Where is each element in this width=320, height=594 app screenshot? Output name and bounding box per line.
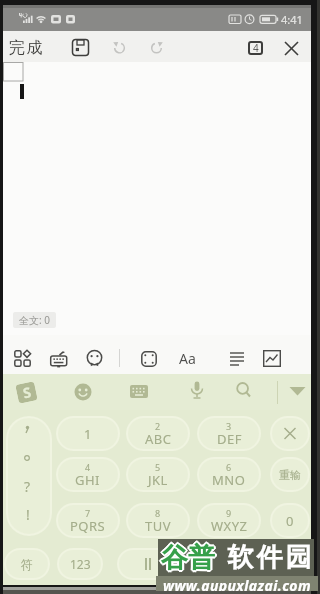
- button[interactable]: 6: [197, 457, 261, 492]
- staticText: ?: [24, 477, 31, 496]
- staticText: S: [21, 382, 33, 402]
- button[interactable]: [141, 351, 157, 367]
- button[interactable]: [130, 385, 148, 398]
- button[interactable]: [284, 41, 299, 56]
- button[interactable]: [190, 381, 204, 401]
- staticText: WXYZ: [211, 517, 248, 535]
- staticText: 123: [70, 556, 91, 572]
- button[interactable]: ?: [6, 416, 52, 536]
- staticText: JKL: [148, 471, 168, 489]
- button[interactable]: Aa: [179, 349, 196, 368]
- staticText: 4: [253, 41, 259, 55]
- button[interactable]: 5: [126, 457, 190, 492]
- staticText: 谷普: [163, 541, 217, 575]
- button[interactable]: [289, 386, 307, 398]
- button[interactable]: [149, 40, 164, 54]
- button[interactable]: [112, 40, 127, 54]
- staticText: 重输: [279, 468, 301, 482]
- staticText: 谷普: [162, 542, 216, 576]
- staticText: 8: [155, 507, 161, 519]
- staticText: ABC: [145, 430, 172, 448]
- staticText: 谷普: [162, 540, 216, 574]
- button[interactable]: 完成: [8, 38, 43, 58]
- button[interactable]: 3: [197, 416, 261, 451]
- staticText: 谷普: [161, 543, 215, 577]
- staticText: 1: [84, 425, 92, 443]
- button[interactable]: 8: [126, 503, 190, 538]
- staticText: 谷普: [160, 542, 214, 576]
- button[interactable]: 123: [57, 548, 103, 580]
- staticText: Aa: [179, 349, 196, 368]
- staticText: 0: [286, 512, 294, 530]
- button[interactable]: 7: [56, 503, 120, 538]
- button[interactable]: [230, 352, 245, 366]
- button[interactable]: [74, 383, 92, 401]
- button[interactable]: 重输: [270, 457, 310, 492]
- staticText: 谷普: [160, 540, 214, 574]
- staticText: 4:41: [281, 12, 303, 27]
- staticText: PQRS: [70, 517, 106, 535]
- button[interactable]: 0: [270, 503, 310, 538]
- button[interactable]: [117, 548, 264, 580]
- staticText: 符: [21, 557, 33, 572]
- staticText: 谷普: [159, 541, 213, 575]
- button[interactable]: [270, 548, 310, 580]
- staticText: 9: [226, 507, 232, 519]
- button[interactable]: 符: [4, 548, 50, 580]
- staticText: !: [26, 505, 30, 524]
- button[interactable]: 9: [197, 503, 261, 538]
- staticText: 6: [226, 461, 232, 473]
- staticText: 谷普: [161, 541, 215, 575]
- staticText: 2: [155, 420, 161, 432]
- button[interactable]: 4: [248, 41, 263, 55]
- button[interactable]: 2: [126, 416, 190, 451]
- staticText: 谷普: [161, 539, 215, 573]
- staticText: GHI: [75, 471, 101, 489]
- button[interactable]: S: [15, 381, 38, 404]
- staticText: 4: [85, 461, 91, 473]
- button[interactable]: [263, 350, 281, 367]
- staticText: 全文: 0: [19, 313, 50, 327]
- button[interactable]: 1: [56, 416, 120, 451]
- button[interactable]: [236, 382, 252, 399]
- button[interactable]: [14, 350, 31, 367]
- staticText: 完成: [8, 38, 43, 58]
- staticText: MNO: [212, 471, 246, 489]
- button[interactable]: [86, 350, 103, 367]
- staticText: TUV: [145, 517, 172, 535]
- button[interactable]: [72, 39, 89, 56]
- staticText: 5: [155, 461, 161, 473]
- staticText: DEF: [217, 430, 242, 448]
- staticText: 软件园: [226, 541, 313, 574]
- button[interactable]: 4: [56, 457, 120, 492]
- staticText: www.gupuxlazai.com: [163, 576, 311, 591]
- button[interactable]: [270, 416, 310, 451]
- button[interactable]: [50, 350, 68, 368]
- staticText: 3: [226, 420, 232, 432]
- staticText: 7: [85, 507, 91, 519]
